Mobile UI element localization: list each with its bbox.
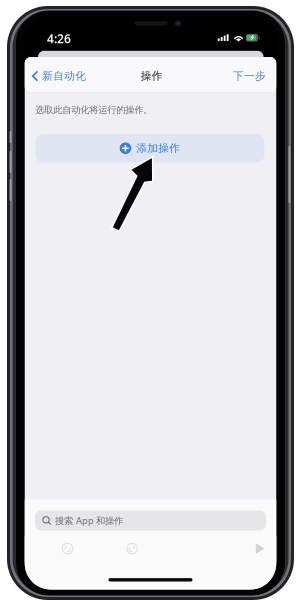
button[interactable]: Redo (120, 537, 144, 560)
button[interactable]: Run (249, 537, 271, 560)
staticText: 下一步 (233, 69, 266, 83)
staticText: 搜索 App 和操作 (55, 514, 123, 527)
staticText: 4:26 (47, 31, 71, 47)
staticText: 选取此自动化将运行的操作。 (35, 104, 152, 116)
button[interactable]: 添加操作 (35, 134, 264, 162)
button[interactable]: 搜索 App 和操作 (35, 510, 266, 530)
staticText: 添加操作 (136, 142, 180, 155)
button[interactable]: 下一步 (227, 63, 272, 89)
button[interactable]: 新自动化 (27, 63, 92, 89)
staticText: 操作 (141, 69, 163, 82)
button[interactable]: Undo (56, 537, 79, 560)
staticText: 新自动化 (42, 69, 86, 83)
